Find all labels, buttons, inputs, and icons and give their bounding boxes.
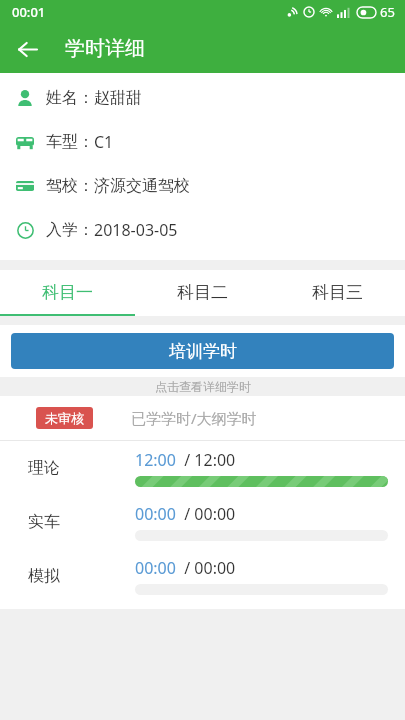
staticText: 00:01	[12, 3, 46, 21]
button[interactable]: Back	[5, 27, 49, 71]
staticText: 学时详细	[65, 36, 145, 61]
button[interactable]: 理论	[0, 441, 405, 495]
staticText: 00:00 / 00:00	[135, 557, 236, 579]
staticText: 入学：	[46, 220, 94, 240]
staticText: 点击查看详细学时	[155, 379, 251, 394]
staticText: 济源交通驾校	[94, 176, 190, 196]
staticText: 培训学时	[169, 341, 237, 362]
staticText: 65	[380, 3, 395, 21]
staticText: 理论	[28, 458, 60, 478]
staticText: 科目二	[177, 282, 228, 303]
staticText: 未审核	[45, 410, 84, 426]
button[interactable]: 科目三	[270, 270, 405, 314]
staticText: 实车	[28, 512, 60, 532]
button[interactable]: 科目一	[0, 270, 135, 314]
button[interactable]: 实车	[0, 495, 405, 549]
staticText: 已学学时/大纲学时	[131, 408, 257, 428]
staticText: 00:00 / 00:00	[135, 503, 236, 525]
button[interactable]: 未审核	[36, 407, 93, 429]
staticText: C1	[94, 131, 114, 153]
staticText: 模拟	[28, 566, 60, 586]
staticText: 12:00 / 12:00	[135, 449, 236, 471]
staticText: 车型：	[46, 132, 94, 152]
button[interactable]: 培训学时	[11, 333, 394, 369]
button[interactable]: 模拟	[0, 549, 405, 603]
staticText: 科目三	[312, 282, 363, 303]
staticText: 驾校：	[46, 176, 94, 196]
staticText: 赵甜甜	[94, 88, 142, 108]
staticText: 姓名：	[46, 88, 94, 108]
staticText: 2018-03-05	[94, 219, 178, 241]
staticText: 科目一	[42, 282, 93, 303]
button[interactable]: 科目二	[135, 270, 270, 314]
